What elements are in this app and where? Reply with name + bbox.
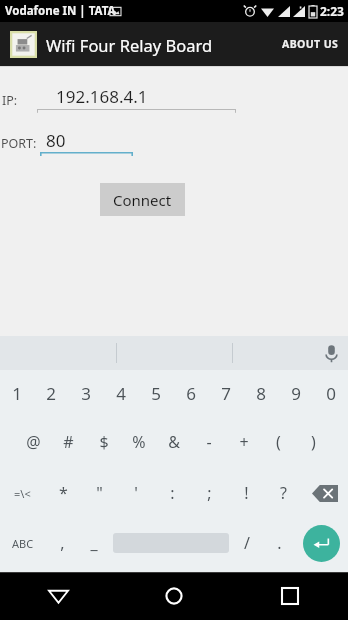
button[interactable]: 8 (243, 370, 278, 416)
button[interactable]: , (46, 518, 78, 568)
staticText: 4 (116, 382, 126, 405)
button[interactable]: Recent apps (232, 572, 348, 620)
button[interactable]: - (191, 416, 226, 468)
staticText: ABOUT US (282, 37, 339, 51)
button[interactable]: 4 (103, 370, 138, 416)
staticText: % (132, 431, 146, 453)
button[interactable]: 80 (40, 128, 133, 152)
staticText: ( (276, 431, 281, 453)
staticText: ! (244, 482, 249, 504)
staticText: 80 (46, 129, 66, 152)
staticText: PORT: (1, 135, 37, 152)
button[interactable]: # (51, 416, 86, 468)
button[interactable]: Backspace (302, 468, 348, 518)
staticText: IP: (2, 92, 18, 109)
button[interactable]: =\< (0, 468, 45, 518)
button[interactable]: + (226, 416, 261, 468)
button[interactable]: $ (86, 416, 121, 468)
staticText: ABC (12, 536, 34, 551)
button[interactable]: _ (78, 518, 110, 568)
button[interactable]: ? (265, 468, 302, 518)
button[interactable]: " (81, 468, 117, 518)
staticText: . (277, 532, 282, 554)
staticText: _ (90, 532, 98, 554)
button[interactable]: Close keyboard (0, 572, 116, 620)
staticText: + (239, 431, 249, 453)
button[interactable]: 1 (0, 370, 34, 416)
button[interactable]: Home (116, 572, 232, 620)
button[interactable]: / (231, 518, 263, 568)
button[interactable]: Enter (295, 518, 348, 568)
button[interactable]: 2 (34, 370, 68, 416)
staticText: " (96, 482, 103, 504)
staticText: 2 (46, 382, 56, 405)
staticText: ) (311, 431, 316, 453)
button[interactable]: Voice input (314, 336, 348, 370)
button[interactable]: 7 (208, 370, 243, 416)
button[interactable] (110, 518, 231, 568)
staticText: 8 (256, 382, 266, 405)
staticText: @ (26, 431, 41, 453)
button[interactable]: 192.168.4.1 (37, 84, 236, 109)
staticText: 7 (221, 382, 231, 405)
staticText: 9 (291, 382, 301, 405)
staticText: , (60, 532, 65, 554)
staticText: 2:23 (320, 3, 344, 19)
button[interactable]: 3 (68, 370, 103, 416)
button[interactable]: & (156, 416, 191, 468)
button[interactable]: ( (261, 416, 296, 468)
button[interactable]: ; (191, 468, 228, 518)
staticText: : (170, 482, 175, 504)
staticText: 1 (12, 382, 22, 405)
button[interactable]: 9 (278, 370, 313, 416)
button[interactable]: @ (16, 416, 51, 468)
button[interactable]: ABOUT US (273, 26, 348, 62)
button[interactable]: Connect (100, 183, 185, 216)
button[interactable]: ' (117, 468, 154, 518)
staticText: ' (134, 482, 138, 504)
staticText: ? (280, 482, 287, 504)
staticText: Wifi Four Relay Board (46, 34, 213, 56)
staticText: 5 (151, 382, 161, 405)
staticText: Connect (113, 190, 172, 210)
button[interactable]: . (263, 518, 295, 568)
staticText: * (59, 482, 68, 504)
button[interactable]: 6 (173, 370, 208, 416)
staticText: # (63, 431, 74, 453)
staticText: Vodafone IN | TATA (5, 3, 116, 19)
staticText: =\< (14, 486, 31, 501)
button[interactable]: ! (228, 468, 265, 518)
button[interactable]: 5 (138, 370, 173, 416)
button[interactable]: * (45, 468, 81, 518)
button[interactable] (233, 336, 348, 370)
button[interactable]: ABC (0, 518, 46, 568)
button[interactable]: 0 (313, 370, 348, 416)
button[interactable]: : (154, 468, 191, 518)
staticText: 6 (186, 382, 196, 405)
button[interactable]: % (121, 416, 156, 468)
staticText: ; (207, 482, 212, 504)
staticText: - (206, 431, 212, 453)
staticText: 192.168.4.1 (56, 85, 148, 108)
staticText: $ (99, 431, 109, 453)
button[interactable]: ) (296, 416, 331, 468)
staticText: 0 (326, 382, 336, 405)
staticText: & (168, 431, 180, 453)
staticText: 3 (81, 382, 91, 405)
staticText: / (244, 532, 250, 554)
